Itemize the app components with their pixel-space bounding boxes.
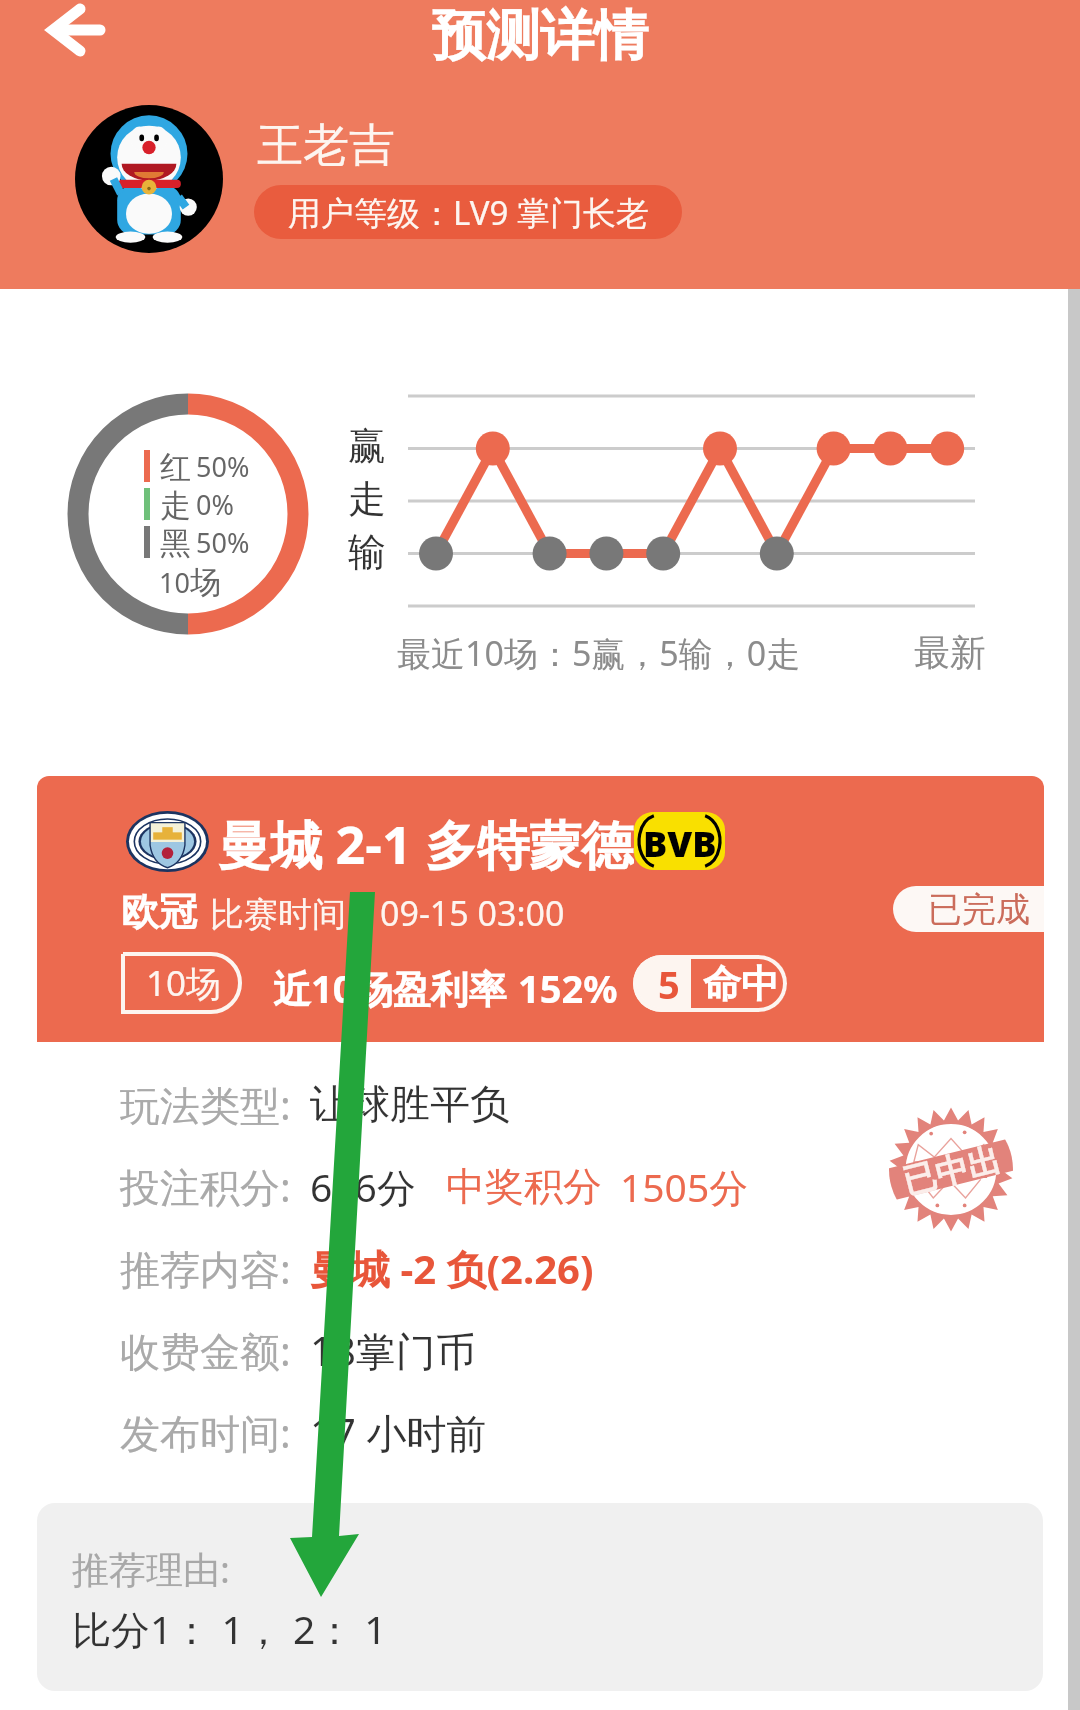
staticText: 曼城 2-1 多特蒙德 (218, 808, 634, 874)
staticText: 曼城 -2 负(2.26) (310, 1241, 594, 1296)
staticText: 已中出 (899, 1139, 1005, 1203)
staticText: 让球胜平负 (310, 1079, 510, 1129)
staticText: 比赛时间：09-15 03:00 (210, 890, 565, 936)
staticText: 10 (159, 564, 190, 601)
staticText: 0% (196, 486, 234, 522)
staticText: 推荐理由: (72, 1543, 230, 1594)
staticText: 预测详情 (432, 2, 648, 70)
button[interactable]: 用户等级：LV9 掌门长老 (254, 185, 682, 239)
staticText: 50% (196, 448, 250, 484)
button[interactable]: 已完成 (893, 886, 1044, 932)
staticText: 比分1： 1， 2： 1 (72, 1602, 387, 1655)
staticText: 赢 (348, 422, 386, 470)
staticText: 50% (196, 524, 250, 560)
staticText: 656分 (310, 1160, 416, 1213)
staticText: 1505分 (620, 1160, 749, 1213)
staticText: 近10场盈利率 (273, 962, 507, 1014)
staticText: 18掌门币 (310, 1323, 476, 1378)
staticText: 最新 (914, 630, 986, 675)
staticText: 走 (348, 475, 386, 523)
staticText: 黑 (160, 524, 191, 560)
button[interactable]: Back (3, 0, 123, 62)
staticText: 10场 (146, 959, 222, 1007)
button[interactable]: 5 (633, 955, 787, 1012)
staticText: 玩法类型: (120, 1077, 310, 1132)
staticText: 中奖积分 (446, 1162, 602, 1211)
button[interactable]: 曼城 2-1 多特蒙德 (37, 776, 1044, 1042)
staticText: 红 (160, 448, 191, 484)
staticText: 推荐内容: (120, 1241, 310, 1296)
staticText: 最近10场：5赢，5输，0走 (397, 630, 801, 676)
staticText: 欧冠 (121, 888, 197, 936)
staticText: 发布时间: (120, 1405, 310, 1460)
staticText: 收费金额: (120, 1323, 310, 1378)
button[interactable]: User avatar (75, 105, 223, 253)
staticText: 已完成 (928, 888, 1030, 931)
staticText: 王老吉 (257, 117, 395, 175)
staticText: 命中 (703, 960, 779, 1008)
staticText: 用户等级：LV9 掌门长老 (288, 190, 649, 235)
staticText: 输 (348, 528, 386, 576)
button[interactable]: 推荐理由: (37, 1503, 1043, 1691)
staticText: BVB (643, 819, 717, 868)
staticText: 5 (658, 958, 680, 1010)
staticText: 投注积分: (120, 1159, 310, 1214)
staticText: 走 (160, 486, 191, 522)
staticText: 152% (518, 962, 618, 1014)
button[interactable]: 10场 (121, 952, 242, 1014)
staticText: 场 (190, 563, 221, 602)
staticText: 17 小时前 (310, 1405, 487, 1460)
